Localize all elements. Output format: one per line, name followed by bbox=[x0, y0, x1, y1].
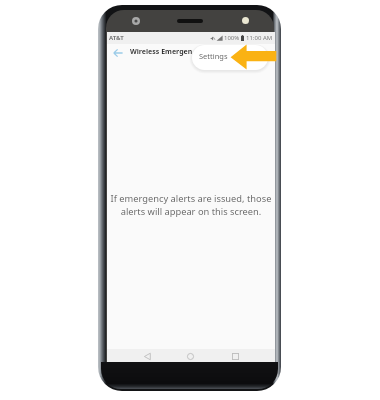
staticText: Wireless Emergen bbox=[130, 47, 193, 57]
button[interactable]: Settings bbox=[192, 45, 268, 70]
button[interactable]: Home bbox=[182, 349, 198, 363]
staticText: AT&T bbox=[109, 34, 124, 42]
staticText: 100% bbox=[224, 34, 240, 42]
button[interactable]: Back bbox=[139, 349, 155, 363]
button[interactable]: Recent apps bbox=[227, 349, 243, 363]
staticText: If emergency alerts are issued, those al… bbox=[110, 192, 272, 217]
staticText: Settings bbox=[199, 51, 228, 61]
staticText: 11:00 AM bbox=[246, 34, 273, 42]
button[interactable]: Navigate up bbox=[109, 44, 126, 61]
